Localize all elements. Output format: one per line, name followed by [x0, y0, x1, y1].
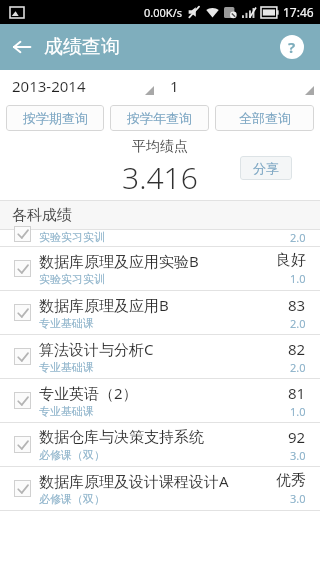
staticText: 数据库原理及应用实验B: [39, 251, 199, 271]
button[interactable]: Help: [272, 27, 312, 67]
staticText: 92: [288, 427, 306, 447]
staticText: 专业基础课: [39, 360, 94, 374]
staticText: 3.0: [290, 448, 306, 463]
staticText: 数据库原理及设计课程设计A: [39, 471, 229, 491]
staticText: 实验实习实训: [39, 272, 105, 286]
button[interactable]: 数据仓库与决策支持系统: [0, 423, 320, 466]
staticText: 分享: [253, 160, 279, 176]
staticText: ?: [288, 37, 296, 57]
staticText: 81: [288, 383, 306, 403]
staticText: 1: [170, 76, 179, 96]
staticText: 数据库原理及应用B: [39, 295, 169, 315]
button[interactable]: 数据库原理及设计课程设计A: [0, 467, 320, 510]
staticText: 83: [288, 295, 306, 315]
button[interactable]: 算法设计与分析C: [0, 335, 320, 378]
staticText: 3.416: [122, 157, 198, 198]
staticText: 必修课（双）: [39, 492, 105, 506]
button[interactable]: 全部查询: [215, 105, 314, 131]
staticText: 专业英语（2）: [39, 383, 138, 403]
staticText: 各科成绩: [12, 206, 72, 225]
staticText: 2.0: [290, 360, 306, 375]
staticText: 良好: [276, 251, 306, 270]
staticText: 3.0: [290, 491, 306, 506]
button[interactable]: Back: [0, 25, 44, 69]
staticText: 0.00K/s: [144, 5, 182, 20]
staticText: 专业基础课: [39, 316, 94, 330]
staticText: 算法设计与分析C: [39, 339, 154, 359]
button[interactable]: 按学年查询: [110, 105, 209, 131]
staticText: 按学年查询: [127, 110, 192, 126]
staticText: 实验实习实训: [39, 230, 105, 244]
button[interactable]: 1: [160, 70, 320, 102]
button[interactable]: 分享: [240, 156, 292, 180]
staticText: 17:46: [283, 4, 314, 20]
staticText: 必修课（双）: [39, 448, 105, 462]
button[interactable]: 按学期查询: [6, 105, 104, 131]
button[interactable]: 数据库原理及应用B: [0, 291, 320, 334]
staticText: 数据仓库与决策支持系统: [39, 428, 204, 447]
staticText: 2.0: [290, 230, 306, 245]
staticText: 1.0: [290, 271, 306, 286]
staticText: 2.0: [290, 316, 306, 331]
staticText: 2013-2014: [12, 76, 86, 96]
button[interactable]: 2013-2014: [0, 70, 160, 102]
button[interactable]: 数据库原理及应用实验B: [0, 247, 320, 290]
staticText: 平均绩点: [132, 138, 188, 156]
staticText: 全部查询: [239, 110, 291, 126]
staticText: 1.0: [290, 404, 306, 419]
staticText: 专业基础课: [39, 404, 94, 418]
staticText: 优秀: [276, 471, 306, 490]
staticText: 成绩查询: [44, 35, 120, 59]
staticText: 按学期查询: [23, 110, 88, 126]
staticText: 82: [288, 339, 306, 359]
button[interactable]: 专业英语（2）: [0, 379, 320, 422]
button[interactable]: 实验实习实训: [0, 230, 320, 246]
